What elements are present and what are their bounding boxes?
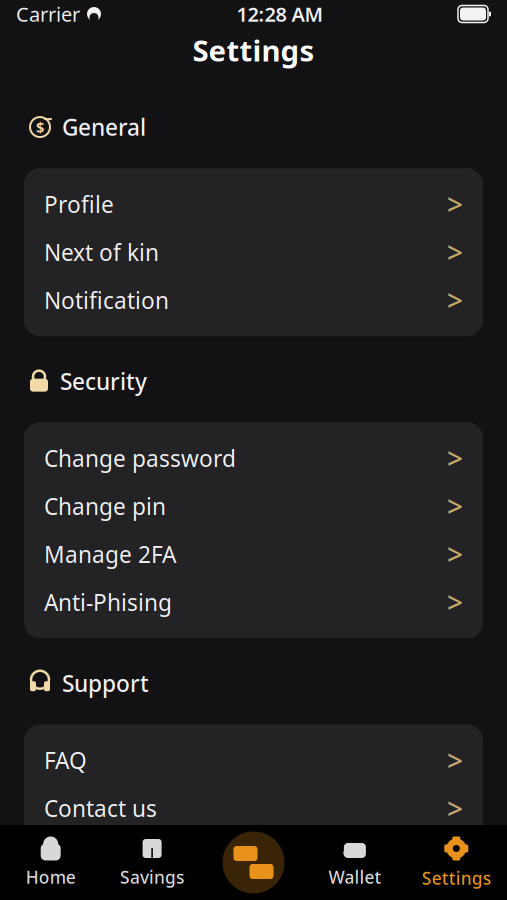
button[interactable]: Settings <box>406 825 507 900</box>
staticText: Manage 2FA <box>44 539 176 569</box>
button[interactable]: Change pin <box>24 482 483 530</box>
staticText: Support <box>62 668 149 698</box>
staticText: > <box>447 440 463 477</box>
staticText: Savings <box>120 865 184 888</box>
staticText: > <box>447 584 463 621</box>
staticText: > <box>447 233 463 271</box>
button[interactable]: Home <box>0 825 101 900</box>
staticText: $ <box>36 117 44 137</box>
button[interactable]: Quick actions <box>203 825 304 900</box>
staticText: Home <box>26 865 76 888</box>
staticText: Notification <box>44 285 169 315</box>
staticText: Carrier <box>16 1 80 27</box>
staticText: Settings <box>192 30 314 69</box>
button[interactable]: Contact us <box>24 784 483 832</box>
staticText: Change password <box>44 443 236 473</box>
staticText: Wallet <box>328 865 381 888</box>
staticText: FAQ <box>44 745 87 775</box>
staticText: Profile <box>44 189 114 219</box>
staticText: > <box>447 281 463 319</box>
button[interactable]: Manage 2FA <box>24 530 483 578</box>
staticText: > <box>447 185 463 223</box>
button[interactable]: Next of kin <box>24 228 483 276</box>
staticText: Next of kin <box>44 237 159 267</box>
staticText: > <box>447 790 463 827</box>
button[interactable]: FAQ <box>24 736 483 784</box>
button[interactable]: Profile <box>24 180 483 228</box>
staticText: > <box>447 536 463 573</box>
staticText: 12:28 AM <box>236 1 323 27</box>
staticText: Security <box>60 366 147 396</box>
staticText: General <box>62 112 146 142</box>
button[interactable]: Savings <box>101 825 203 900</box>
button[interactable]: Anti-Phising <box>24 578 483 626</box>
staticText: Contact us <box>44 793 157 823</box>
staticText: > <box>447 742 463 779</box>
button[interactable]: Notification <box>24 276 483 324</box>
staticText: Anti-Phising <box>44 587 172 617</box>
button[interactable]: Wallet <box>304 825 406 900</box>
staticText: > <box>447 488 463 525</box>
button[interactable]: Change password <box>24 434 483 482</box>
staticText: Change pin <box>44 491 166 521</box>
staticText: Settings <box>422 866 491 889</box>
